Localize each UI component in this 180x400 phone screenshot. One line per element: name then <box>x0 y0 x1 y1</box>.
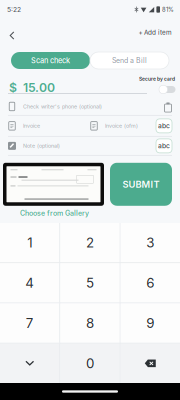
staticText: 5:22 <box>7 5 21 14</box>
button[interactable]: abc <box>156 119 172 133</box>
button[interactable]: 8 <box>60 303 120 343</box>
staticText: Secure by card <box>139 76 175 82</box>
staticText: 5 <box>86 275 94 291</box>
button[interactable]: Secure by card <box>158 85 175 94</box>
button[interactable]: abc <box>156 139 172 153</box>
staticText: 0 <box>86 355 94 371</box>
staticText: 1 <box>27 235 32 251</box>
button[interactable]: Back <box>1 19 23 45</box>
button[interactable]: + <box>135 19 175 39</box>
staticText: SUBMIT <box>122 179 159 190</box>
staticText: 15.00 <box>23 80 55 95</box>
staticText: 9 <box>146 315 154 331</box>
button[interactable]: 1 <box>0 223 59 262</box>
button[interactable]: SUBMIT <box>110 163 172 206</box>
staticText: Choose from Gallery <box>20 209 89 217</box>
button[interactable]: 5 <box>60 263 120 303</box>
button[interactable]: Scan check <box>11 52 90 69</box>
button[interactable]: Paste <box>164 101 172 111</box>
staticText: Note (optional) <box>23 143 60 149</box>
staticText: 2 <box>86 235 94 251</box>
staticText: 7 <box>26 315 34 331</box>
staticText: Add item <box>144 29 172 36</box>
staticText: Invoice (ofm) <box>105 123 138 129</box>
staticText: 3 <box>146 235 154 251</box>
button[interactable]: 6 <box>120 263 180 303</box>
staticText: Invoice <box>23 123 40 129</box>
staticText: $ <box>9 80 17 95</box>
staticText: 4 <box>25 275 34 291</box>
staticText: 6 <box>146 275 154 291</box>
button[interactable]: 9 <box>120 303 180 343</box>
button[interactable]: 7 <box>0 303 59 343</box>
staticText: Send a Bill <box>112 56 147 65</box>
staticText: abc <box>158 142 170 150</box>
button[interactable]: 2 <box>60 223 120 262</box>
button[interactable]: 0 <box>60 344 120 383</box>
button[interactable]: Send a Bill <box>90 52 169 69</box>
button[interactable]: Choose from Gallery <box>14 207 95 220</box>
button[interactable]: Check photo <box>3 163 104 206</box>
staticText: 8 <box>86 315 94 331</box>
staticText: Scan check <box>31 56 70 65</box>
staticText: + <box>138 29 142 36</box>
staticText: 81% <box>162 6 174 13</box>
button[interactable]: Hide keyboard <box>0 344 59 383</box>
staticText: Check writer's phone (optional) <box>23 103 102 110</box>
button[interactable]: 4 <box>0 263 59 303</box>
button[interactable]: Delete <box>120 344 180 383</box>
staticText: abc <box>158 122 170 130</box>
button[interactable]: 3 <box>120 223 180 262</box>
